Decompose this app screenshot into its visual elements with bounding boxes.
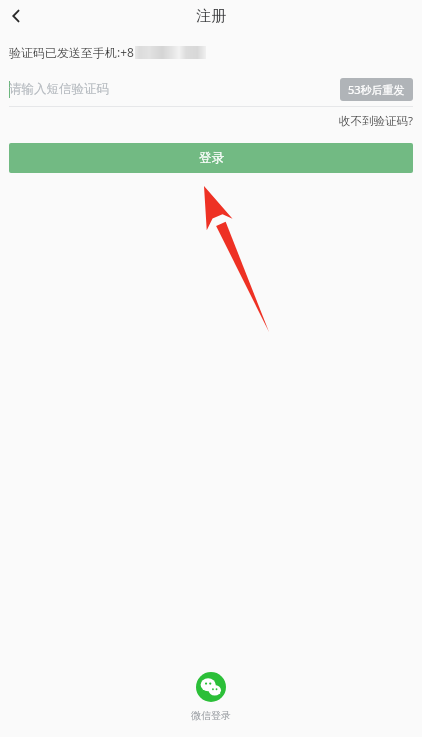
button[interactable]: 收不到验证码? xyxy=(339,111,422,131)
staticText: 登录 xyxy=(199,150,224,166)
staticText: 收不到验证码? xyxy=(339,113,413,129)
button[interactable]: 53秒后重发 xyxy=(340,78,413,101)
staticText: 53秒后重发 xyxy=(348,82,405,97)
button[interactable]: 登录 xyxy=(9,143,413,173)
button[interactable]: 微信登录 xyxy=(183,670,239,724)
button[interactable]: Back xyxy=(0,0,32,32)
staticText: 验证码已发送至手机:+8 xyxy=(9,44,134,60)
staticText: 请输入短信验证码 xyxy=(9,81,109,97)
staticText: 微信登录 xyxy=(191,709,231,722)
staticText: 注册 xyxy=(196,7,226,26)
